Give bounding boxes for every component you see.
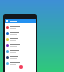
button[interactable]: Compose [19,65,23,69]
button[interactable] [5,54,36,60]
button[interactable] [5,60,36,66]
button[interactable] [5,36,36,42]
button[interactable] [5,30,36,36]
button[interactable] [5,48,36,54]
button[interactable] [5,19,36,23]
button[interactable] [5,24,36,30]
button[interactable] [5,42,36,48]
